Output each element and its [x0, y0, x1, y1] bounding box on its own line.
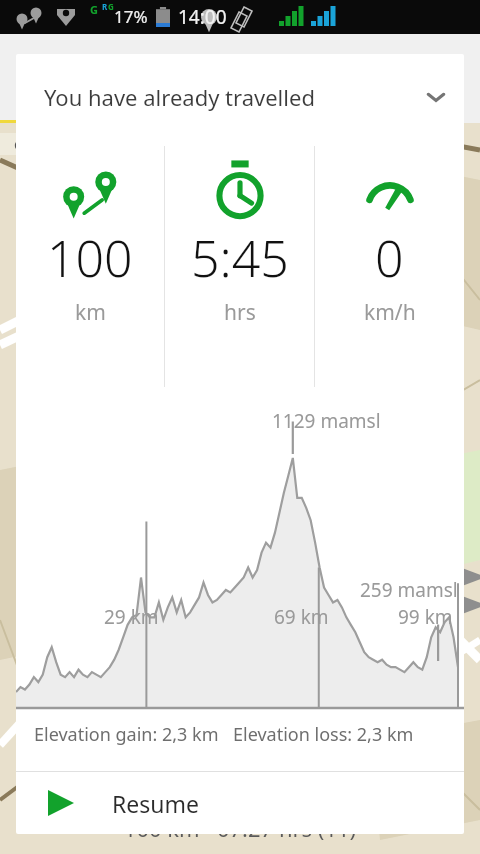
staticText: Elevation loss: 2,3 km [233, 722, 414, 747]
staticText: G [108, 1, 114, 12]
other: Collapse [408, 69, 464, 125]
staticText: 259 mamsl [360, 577, 458, 603]
staticText: 100 km · 07:27 hrs (11) [0, 813, 480, 843]
button[interactable]: 100 [16, 140, 164, 393]
button[interactable]: You have already travelled [16, 54, 464, 140]
staticText: G [90, 2, 98, 17]
staticText: 17% [114, 5, 148, 28]
staticText: R [102, 1, 108, 12]
staticText: 29 km [104, 604, 159, 630]
staticText: 5:45 [191, 224, 289, 292]
staticText: 1129 mamsl [272, 408, 381, 434]
button[interactable]: 5:45 [165, 140, 314, 393]
staticText: You have already travelled [44, 82, 408, 112]
button[interactable]: 0 [315, 140, 464, 393]
staticText: 0 [375, 224, 404, 292]
staticText: 100 [47, 224, 133, 292]
staticText: km [75, 298, 106, 327]
staticText: km/h [364, 298, 416, 327]
staticText: O [14, 136, 25, 154]
staticText: 69 km [274, 604, 329, 630]
staticText: hrs [224, 298, 256, 327]
staticText: Resume [112, 788, 199, 819]
staticText: 14:00 [178, 4, 227, 30]
staticText: Elevation gain: 2,3 km [34, 722, 219, 747]
staticText: 99 km [398, 604, 453, 630]
button[interactable]: Resume [16, 772, 464, 834]
